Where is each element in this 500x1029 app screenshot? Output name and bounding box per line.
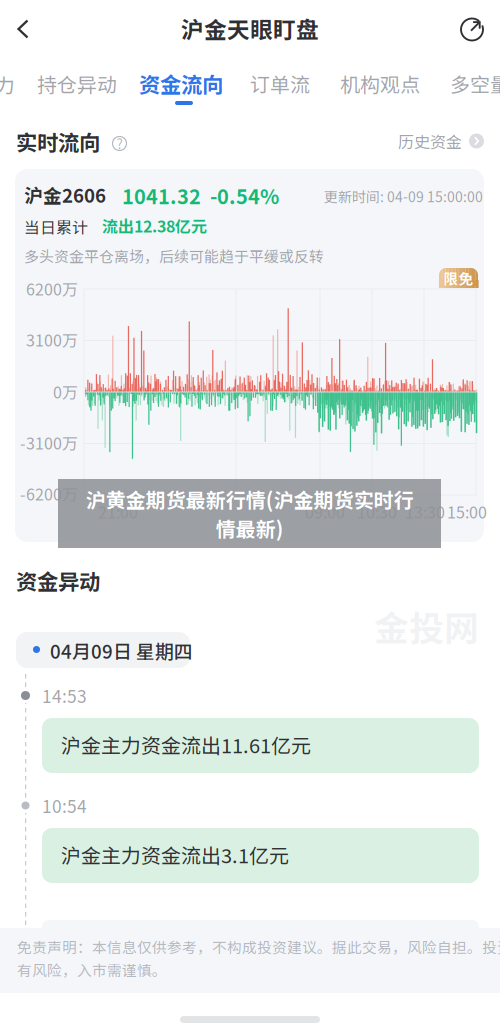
staticText: 多空量 [450, 69, 500, 98]
staticText: 沪黄金期货最新行情(沪金期货实时行 情最新) [85, 484, 413, 542]
staticText: 多头资金平仓离场，后续可能趋于平缓或反转 [24, 245, 324, 267]
button[interactable]: 资金流向 [139, 58, 205, 106]
staticText: 当日累计 [24, 215, 88, 238]
button[interactable]: 沪金主力资金流出11.61亿元 [42, 718, 479, 773]
staticText: 3100万 [26, 328, 78, 351]
button[interactable]: 订单流 [250, 58, 297, 106]
staticText: 有风险，入市需谨慎。 [17, 959, 167, 980]
staticText: 04月09日 星期四 [50, 637, 193, 664]
staticText: 0万 [53, 380, 78, 403]
button[interactable]: 多空量 [450, 58, 497, 106]
staticText: 实时流向 [16, 126, 100, 157]
staticText: 资金异动 [16, 565, 100, 596]
staticText: 21:00 [98, 500, 138, 523]
staticText: -3100万 [20, 431, 78, 454]
button[interactable]: 历史资金 [16, 126, 484, 156]
staticText: 6200万 [26, 277, 78, 300]
staticText: 历史资金 [398, 129, 462, 153]
staticText: 14:53 [42, 683, 87, 708]
staticText: 资金流向 [139, 68, 223, 99]
staticText: 限免 [443, 267, 473, 289]
staticText: 沪金天眼盯盘 [181, 12, 319, 45]
staticText: 15:00 [447, 500, 487, 523]
staticText: ? [116, 134, 122, 153]
staticText: 持仓异动 [37, 69, 117, 98]
button[interactable]: 沪金主力资金流出3.1亿元 [42, 828, 479, 883]
staticText: 免责声明：本信息仅供参考，不构成投资建议。据此交易，风险自担。投资 [17, 936, 500, 957]
staticText: 沪金主力资金流出11.61亿元 [61, 730, 311, 759]
staticText: 10:54 [42, 793, 87, 818]
staticText: -6200万 [20, 482, 78, 505]
staticText: 机构观点 [340, 69, 420, 98]
staticText: 1041.32 [122, 181, 201, 210]
button[interactable]: 机构观点 [340, 58, 402, 106]
staticText: 13:30 [405, 500, 445, 523]
staticText: -0.54% [210, 181, 279, 210]
button[interactable]: 持仓异动 [37, 58, 99, 106]
staticText: 力 [0, 70, 15, 99]
staticText: 沪金2606 [24, 181, 106, 208]
button[interactable]: Refresh [444, 0, 500, 58]
staticText: 09:00 [305, 500, 345, 523]
staticText: 流出12.38亿元 [102, 214, 207, 237]
staticText: 沪金主力资金流出3.1亿元 [61, 840, 289, 869]
staticText: 10:30 [357, 500, 397, 523]
button[interactable]: Back [0, 0, 46, 58]
staticText: 金投网 [374, 601, 479, 651]
staticText: 更新时间: 04-09 15:00:00 [324, 186, 483, 206]
staticText: 订单流 [250, 69, 310, 98]
